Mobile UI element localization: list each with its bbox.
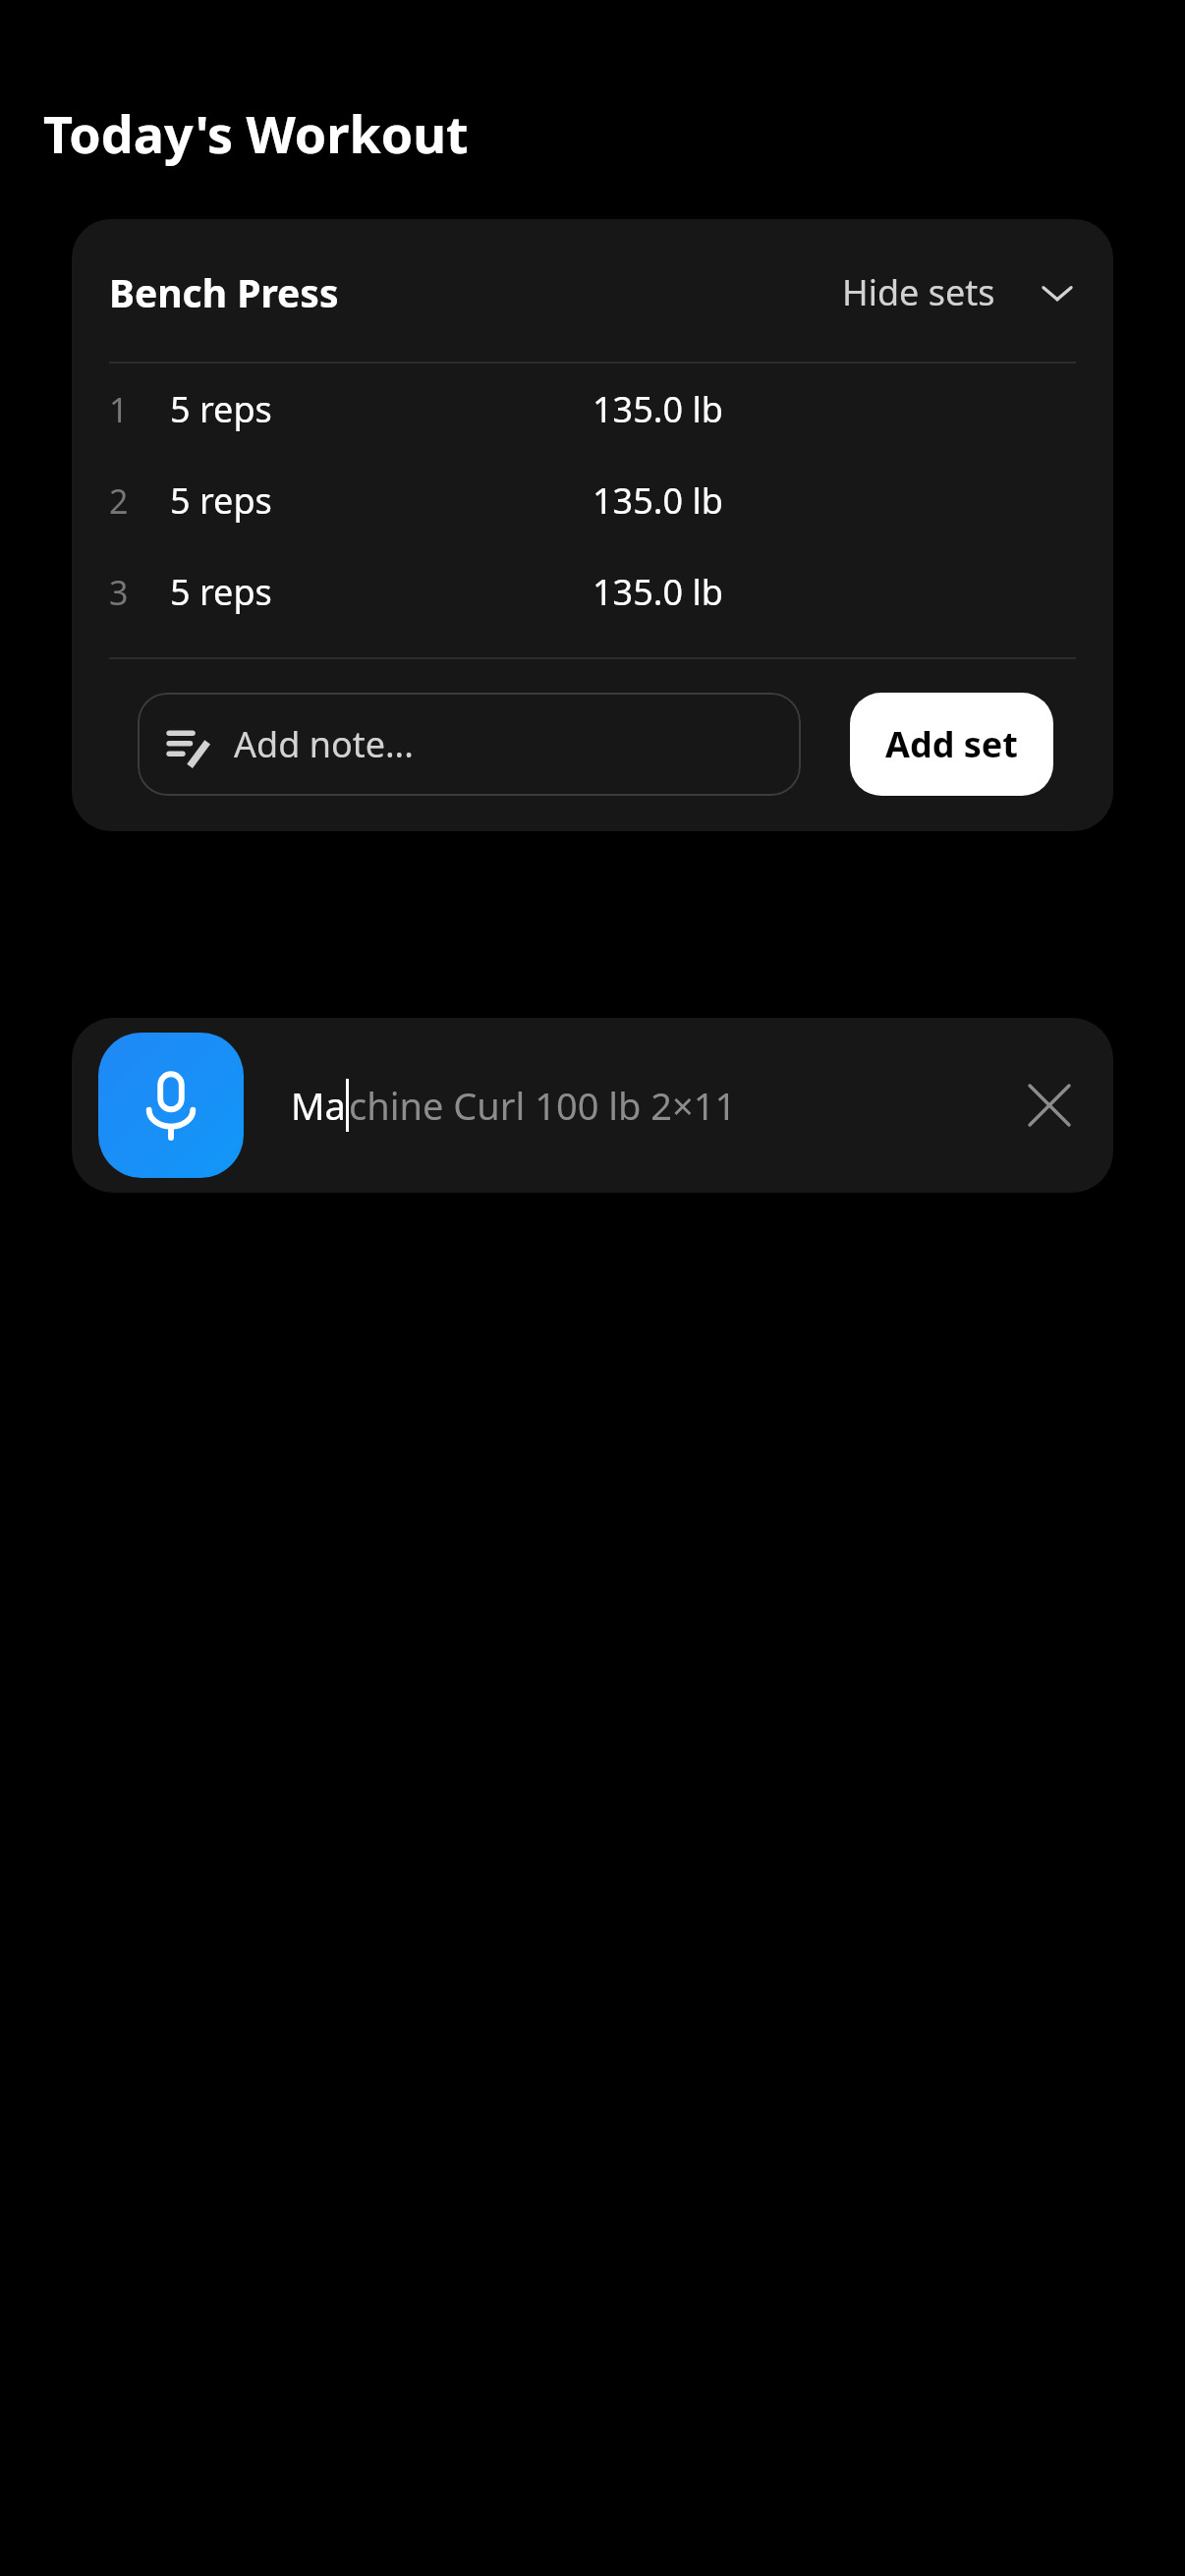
- button[interactable]: 1: [72, 364, 1113, 455]
- staticText: Ma: [291, 1080, 346, 1131]
- staticText: 2: [109, 478, 129, 524]
- button[interactable]: Voice input: [98, 1033, 244, 1178]
- staticText: 1: [109, 387, 129, 432]
- button[interactable]: Bench Press: [72, 219, 1113, 362]
- button[interactable]: Add note: [138, 693, 801, 796]
- staticText: 5 reps: [170, 385, 272, 433]
- staticText: chine Curl 100 lb 2×11: [349, 1080, 737, 1131]
- button[interactable]: 2: [72, 455, 1113, 546]
- staticText: 135.0 lb: [592, 385, 723, 433]
- staticText: 135.0 lb: [592, 476, 723, 525]
- button[interactable]: Clear: [1005, 1061, 1094, 1149]
- staticText: Today's Workout: [43, 98, 469, 168]
- staticText: Add note...: [234, 720, 414, 768]
- staticText: Add set: [885, 720, 1018, 768]
- other: Add note: [167, 724, 208, 765]
- staticText: 135.0 lb: [592, 568, 723, 616]
- staticText: 5 reps: [170, 568, 272, 616]
- button[interactable]: 3: [72, 546, 1113, 638]
- staticText: 5 reps: [170, 476, 272, 525]
- staticText: 3: [109, 570, 129, 615]
- button[interactable]: Add set: [850, 693, 1053, 796]
- staticText: Hide sets: [842, 268, 995, 316]
- staticText: Bench Press: [109, 266, 339, 318]
